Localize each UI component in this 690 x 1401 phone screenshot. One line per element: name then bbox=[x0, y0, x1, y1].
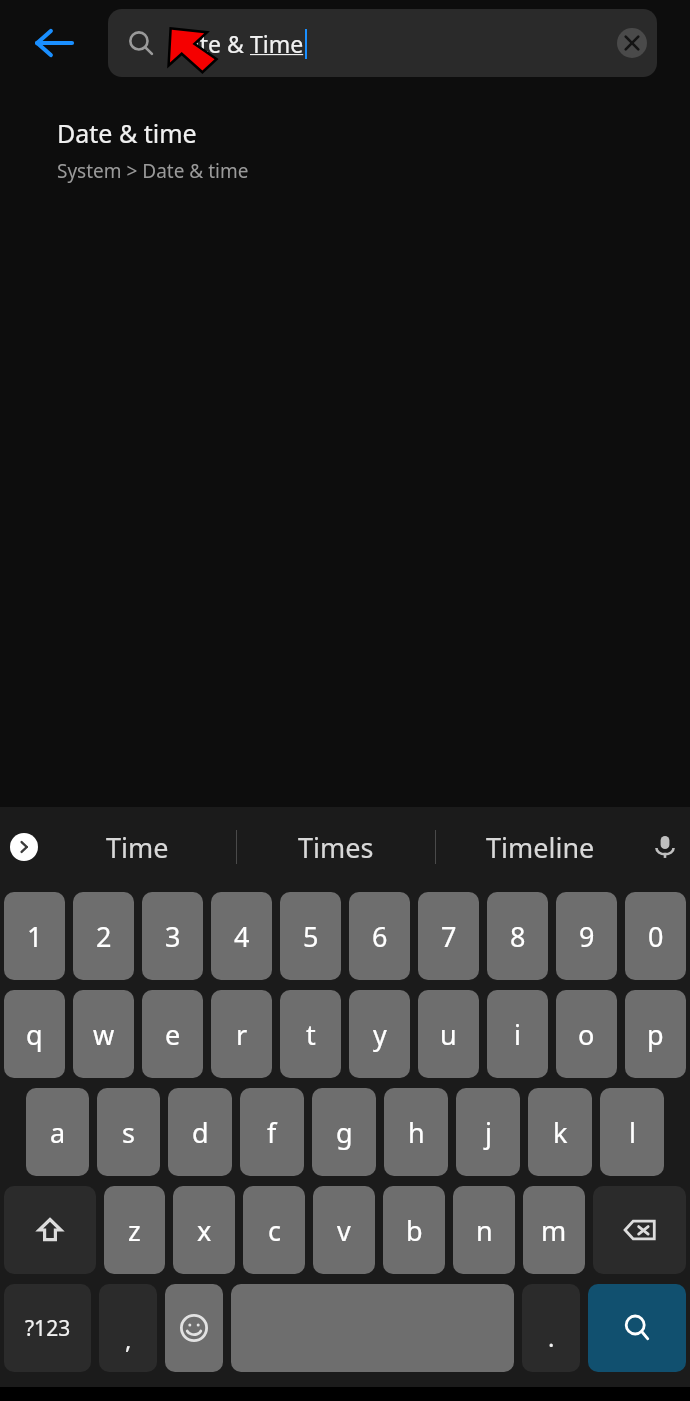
staticText: Timeline bbox=[486, 829, 595, 866]
button[interactable]: 1 bbox=[4, 892, 65, 980]
staticText: 4 bbox=[234, 918, 250, 955]
staticText: 9 bbox=[579, 918, 595, 955]
button[interactable]: k bbox=[528, 1088, 592, 1176]
staticText: q bbox=[26, 1016, 43, 1053]
staticText: w bbox=[93, 1016, 115, 1053]
staticText: ?123 bbox=[25, 1314, 71, 1343]
button[interactable]: i bbox=[487, 990, 548, 1078]
button[interactable]: Clear query bbox=[607, 18, 657, 68]
button[interactable]: y bbox=[349, 990, 410, 1078]
button[interactable]: f bbox=[240, 1088, 304, 1176]
staticText: s bbox=[122, 1114, 135, 1151]
staticText: b bbox=[406, 1212, 423, 1249]
button[interactable]: d bbox=[168, 1088, 232, 1176]
button[interactable]: a bbox=[26, 1088, 89, 1176]
staticText: System > Date & time bbox=[57, 158, 249, 184]
staticText: p bbox=[647, 1016, 664, 1053]
staticText: Date & bbox=[170, 28, 250, 59]
staticText: Time bbox=[106, 829, 169, 866]
staticText: r bbox=[236, 1016, 248, 1053]
button[interactable]: 5 bbox=[280, 892, 341, 980]
button[interactable]: t bbox=[280, 990, 341, 1078]
staticText: Date & time bbox=[57, 116, 197, 150]
button[interactable]: 6 bbox=[349, 892, 410, 980]
staticText: 2 bbox=[96, 918, 112, 955]
staticText: t bbox=[306, 1016, 316, 1053]
staticText: o bbox=[578, 1016, 595, 1053]
button[interactable]: m bbox=[523, 1186, 585, 1274]
button[interactable]: 0 bbox=[625, 892, 686, 980]
staticText: 1 bbox=[27, 918, 43, 955]
button[interactable]: l bbox=[600, 1088, 664, 1176]
staticText: Time bbox=[250, 28, 304, 59]
button[interactable]: 7 bbox=[418, 892, 479, 980]
button[interactable]: More suggestions bbox=[10, 833, 38, 861]
staticText: d bbox=[192, 1114, 209, 1151]
staticText: z bbox=[128, 1212, 141, 1249]
button[interactable]: Back bbox=[0, 0, 108, 86]
staticText: i bbox=[514, 1016, 521, 1053]
staticText: y bbox=[373, 1016, 387, 1053]
button[interactable]: Shift bbox=[4, 1186, 96, 1274]
button[interactable]: h bbox=[384, 1088, 448, 1176]
button[interactable]: n bbox=[453, 1186, 515, 1274]
staticText: 7 bbox=[441, 918, 457, 955]
staticText: x bbox=[197, 1212, 212, 1249]
button[interactable]: Times bbox=[237, 807, 435, 887]
staticText: 6 bbox=[372, 918, 388, 955]
staticText: l bbox=[629, 1114, 636, 1151]
staticText: , bbox=[125, 1323, 132, 1356]
staticText: e bbox=[165, 1016, 181, 1053]
button[interactable]: b bbox=[383, 1186, 445, 1274]
staticText: m bbox=[541, 1212, 567, 1249]
button[interactable]: Search bbox=[588, 1284, 686, 1372]
button[interactable]: Timeline bbox=[436, 807, 644, 887]
button[interactable]: 4 bbox=[211, 892, 272, 980]
button[interactable]: g bbox=[312, 1088, 376, 1176]
button[interactable]: z bbox=[104, 1186, 165, 1274]
button[interactable]: q bbox=[4, 990, 65, 1078]
button[interactable]: Backspace bbox=[593, 1186, 686, 1274]
button[interactable]: v bbox=[313, 1186, 375, 1274]
staticText: Times bbox=[298, 829, 374, 866]
staticText: 8 bbox=[510, 918, 526, 955]
staticText: c bbox=[268, 1212, 281, 1249]
staticText: g bbox=[336, 1114, 353, 1151]
staticText: 0 bbox=[648, 918, 664, 955]
staticText: n bbox=[476, 1212, 493, 1249]
button[interactable]: j bbox=[456, 1088, 520, 1176]
staticText: 5 bbox=[303, 918, 319, 955]
button[interactable]: 3 bbox=[142, 892, 203, 980]
staticText: . bbox=[548, 1321, 555, 1354]
button[interactable]: ?123 bbox=[4, 1284, 91, 1372]
button[interactable]: Space bbox=[231, 1284, 514, 1372]
staticText: v bbox=[337, 1212, 351, 1249]
button[interactable]: r bbox=[211, 990, 272, 1078]
button[interactable]: e bbox=[142, 990, 203, 1078]
button[interactable]: 8 bbox=[487, 892, 548, 980]
button[interactable]: 2 bbox=[73, 892, 134, 980]
button[interactable]: Date & bbox=[108, 9, 657, 77]
button[interactable]: . bbox=[522, 1284, 580, 1372]
button[interactable]: Date & time bbox=[0, 116, 690, 184]
button[interactable]: s bbox=[97, 1088, 160, 1176]
button[interactable]: p bbox=[625, 990, 686, 1078]
button[interactable]: Voice input bbox=[644, 807, 686, 887]
staticText: j bbox=[485, 1114, 492, 1151]
staticText: a bbox=[50, 1114, 66, 1151]
staticText: u bbox=[440, 1016, 457, 1053]
button[interactable]: c bbox=[243, 1186, 305, 1274]
button[interactable]: Time bbox=[38, 807, 236, 887]
staticText: h bbox=[408, 1114, 425, 1151]
button[interactable]: u bbox=[418, 990, 479, 1078]
button[interactable]: Emoji bbox=[165, 1284, 223, 1372]
staticText: 3 bbox=[165, 918, 181, 955]
staticText: f bbox=[267, 1114, 277, 1151]
button[interactable]: , bbox=[99, 1284, 157, 1372]
button[interactable]: 9 bbox=[556, 892, 617, 980]
button[interactable]: x bbox=[173, 1186, 235, 1274]
button[interactable]: o bbox=[556, 990, 617, 1078]
staticText: k bbox=[553, 1114, 568, 1151]
button[interactable]: w bbox=[73, 990, 134, 1078]
